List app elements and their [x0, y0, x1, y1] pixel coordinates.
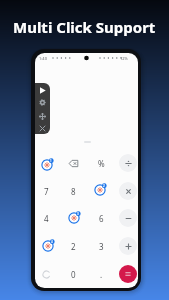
- button[interactable]: Click point 3: [65, 209, 83, 227]
- button[interactable]: 8: [60, 178, 86, 204]
- staticText: 2: [71, 241, 76, 252]
- other: add: [119, 237, 137, 255]
- staticText: 8: [71, 186, 76, 197]
- staticText: 1: [44, 241, 49, 252]
- staticText: 1: [50, 159, 52, 163]
- button[interactable]: div: [115, 150, 138, 176]
- staticText: 12%: [120, 56, 128, 61]
- button[interactable]: Click point 1: [38, 156, 56, 174]
- staticText: 9: [99, 186, 104, 197]
- button[interactable]: %: [88, 150, 114, 176]
- other: sub: [119, 209, 137, 227]
- staticText: 2: [103, 184, 105, 188]
- button[interactable]: mul: [115, 178, 138, 204]
- button[interactable]: Click point 2: [91, 181, 109, 199]
- button[interactable]: 3: [88, 233, 114, 259]
- staticText: 3: [77, 212, 79, 216]
- staticText: Multi Click Support: [13, 17, 156, 37]
- button[interactable]: Settings: [36, 96, 48, 108]
- other: History: [43, 271, 50, 278]
- button[interactable]: Close: [36, 122, 48, 134]
- other: Equals: [119, 265, 137, 283]
- button[interactable]: Start: [36, 84, 48, 96]
- button[interactable]: sub: [115, 205, 138, 231]
- other: div: [119, 154, 137, 172]
- button[interactable]: Move: [36, 110, 48, 122]
- staticText: %: [98, 158, 105, 169]
- button[interactable]: 0: [60, 261, 86, 287]
- other: Backspace: [69, 159, 78, 168]
- button[interactable]: .: [88, 261, 114, 287]
- staticText: 4: [44, 213, 49, 224]
- button[interactable]: AC: [35, 150, 59, 176]
- staticText: 1:40: [39, 56, 47, 61]
- staticText: 7: [44, 186, 49, 197]
- button[interactable]: 5: [60, 205, 86, 231]
- button[interactable]: 4: [35, 205, 59, 231]
- button[interactable]: Click point 4: [39, 237, 57, 255]
- staticText: 3: [99, 241, 104, 252]
- button[interactable]: Equals: [115, 261, 138, 287]
- button[interactable]: 2: [60, 233, 86, 259]
- button[interactable]: History: [35, 261, 59, 287]
- button[interactable]: add: [115, 233, 138, 259]
- button[interactable]: 1: [35, 233, 59, 259]
- button[interactable]: 7: [35, 178, 59, 204]
- staticText: AC: [42, 158, 51, 168]
- staticText: 0: [71, 269, 76, 280]
- button[interactable]: 6: [88, 205, 114, 231]
- staticText: .: [100, 269, 103, 280]
- staticText: 6: [99, 213, 104, 224]
- staticText: 5: [71, 213, 76, 224]
- button[interactable]: 9: [88, 178, 114, 204]
- staticText: 4: [51, 240, 53, 244]
- other: mul: [119, 182, 137, 200]
- button[interactable]: Backspace: [60, 150, 86, 176]
